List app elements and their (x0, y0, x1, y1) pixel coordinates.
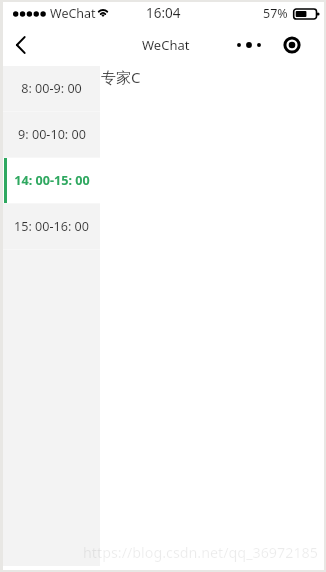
button[interactable]: Back (3, 27, 39, 63)
staticText: 57% (263, 5, 288, 22)
staticText: WeChat (50, 5, 96, 22)
button[interactable]: 8: 00-9: 00 (3, 66, 100, 111)
staticText: 15: 00-16: 00 (14, 218, 89, 235)
button[interactable]: 14: 00-15: 00 (3, 158, 100, 203)
staticText: WeChat (142, 36, 190, 54)
staticText: 8: 00-9: 00 (21, 80, 82, 97)
staticText: 专家C (101, 67, 141, 87)
button[interactable]: Close mini program (279, 32, 305, 58)
staticText: 16:04 (146, 4, 181, 22)
button[interactable]: 9: 00-10: 00 (3, 112, 100, 157)
button[interactable]: More (234, 34, 264, 56)
staticText: 9: 00-10: 00 (18, 126, 86, 143)
button[interactable]: 15: 00-16: 00 (3, 204, 100, 249)
staticText: 14: 00-15: 00 (14, 172, 90, 189)
staticText: https://blog.csdn.net/qq_36972185 (83, 543, 318, 562)
